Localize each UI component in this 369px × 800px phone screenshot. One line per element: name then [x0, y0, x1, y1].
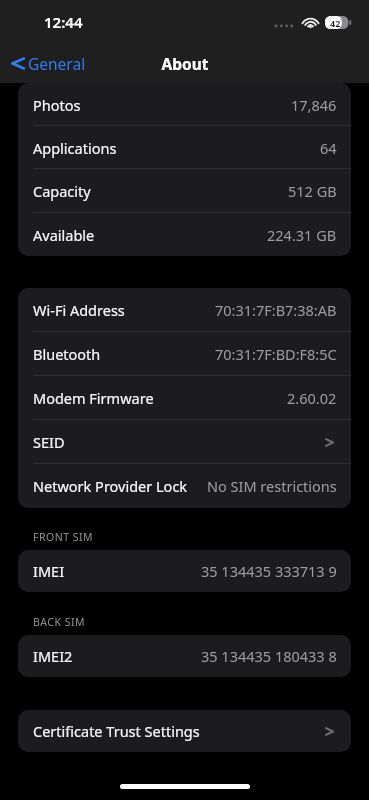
- button[interactable]: Modem Firmware: [18, 376, 351, 420]
- staticText: BACK SIM: [33, 615, 86, 629]
- staticText: IMEI: [33, 561, 65, 581]
- button[interactable]: Certificate Trust Settings: [18, 710, 351, 752]
- button[interactable]: Applications: [18, 126, 351, 169]
- staticText: IMEI2: [33, 646, 73, 666]
- staticText: No SIM restrictions: [207, 476, 337, 496]
- staticText: 512 GB: [288, 181, 337, 201]
- button[interactable]: IMEI: [18, 550, 351, 592]
- staticText: 12:44: [44, 12, 83, 32]
- button[interactable]: Network Provider Lock: [18, 464, 351, 508]
- staticText: Modem Firmware: [33, 388, 154, 408]
- staticText: 224.31 GB: [267, 225, 337, 245]
- staticText: FRONT SIM: [33, 530, 94, 544]
- staticText: 42: [330, 17, 341, 29]
- staticText: Network Provider Lock: [33, 476, 188, 496]
- staticText: 17,846: [291, 95, 337, 115]
- button[interactable]: Capacity: [18, 169, 351, 213]
- staticText: Photos: [33, 95, 81, 115]
- button[interactable]: Wi-Fi Address: [18, 288, 351, 332]
- button[interactable]: Available: [18, 213, 351, 256]
- button[interactable]: IMEI2: [18, 635, 351, 677]
- button[interactable]: SEID: [18, 420, 351, 464]
- staticText: About: [161, 53, 209, 74]
- staticText: Bluetooth: [33, 344, 101, 364]
- staticText: SEID: [33, 432, 65, 452]
- button[interactable]: Bluetooth: [18, 332, 351, 376]
- staticText: Capacity: [33, 181, 91, 201]
- staticText: 35 134435 180433 8: [201, 646, 337, 666]
- staticText: Applications: [33, 138, 117, 158]
- button[interactable]: General: [8, 49, 88, 78]
- staticText: 2.60.02: [287, 388, 337, 408]
- staticText: Wi-Fi Address: [33, 300, 125, 320]
- staticText: Certificate Trust Settings: [33, 721, 200, 741]
- button[interactable]: Photos: [18, 83, 351, 126]
- staticText: 64: [320, 138, 337, 158]
- staticText: 70:31:7F:BD:F8:5C: [215, 344, 337, 364]
- staticText: Available: [33, 225, 95, 245]
- staticText: 70:31:7F:B7:38:AB: [215, 300, 337, 320]
- staticText: General: [28, 53, 86, 74]
- staticText: 35 134435 333713 9: [201, 561, 337, 581]
